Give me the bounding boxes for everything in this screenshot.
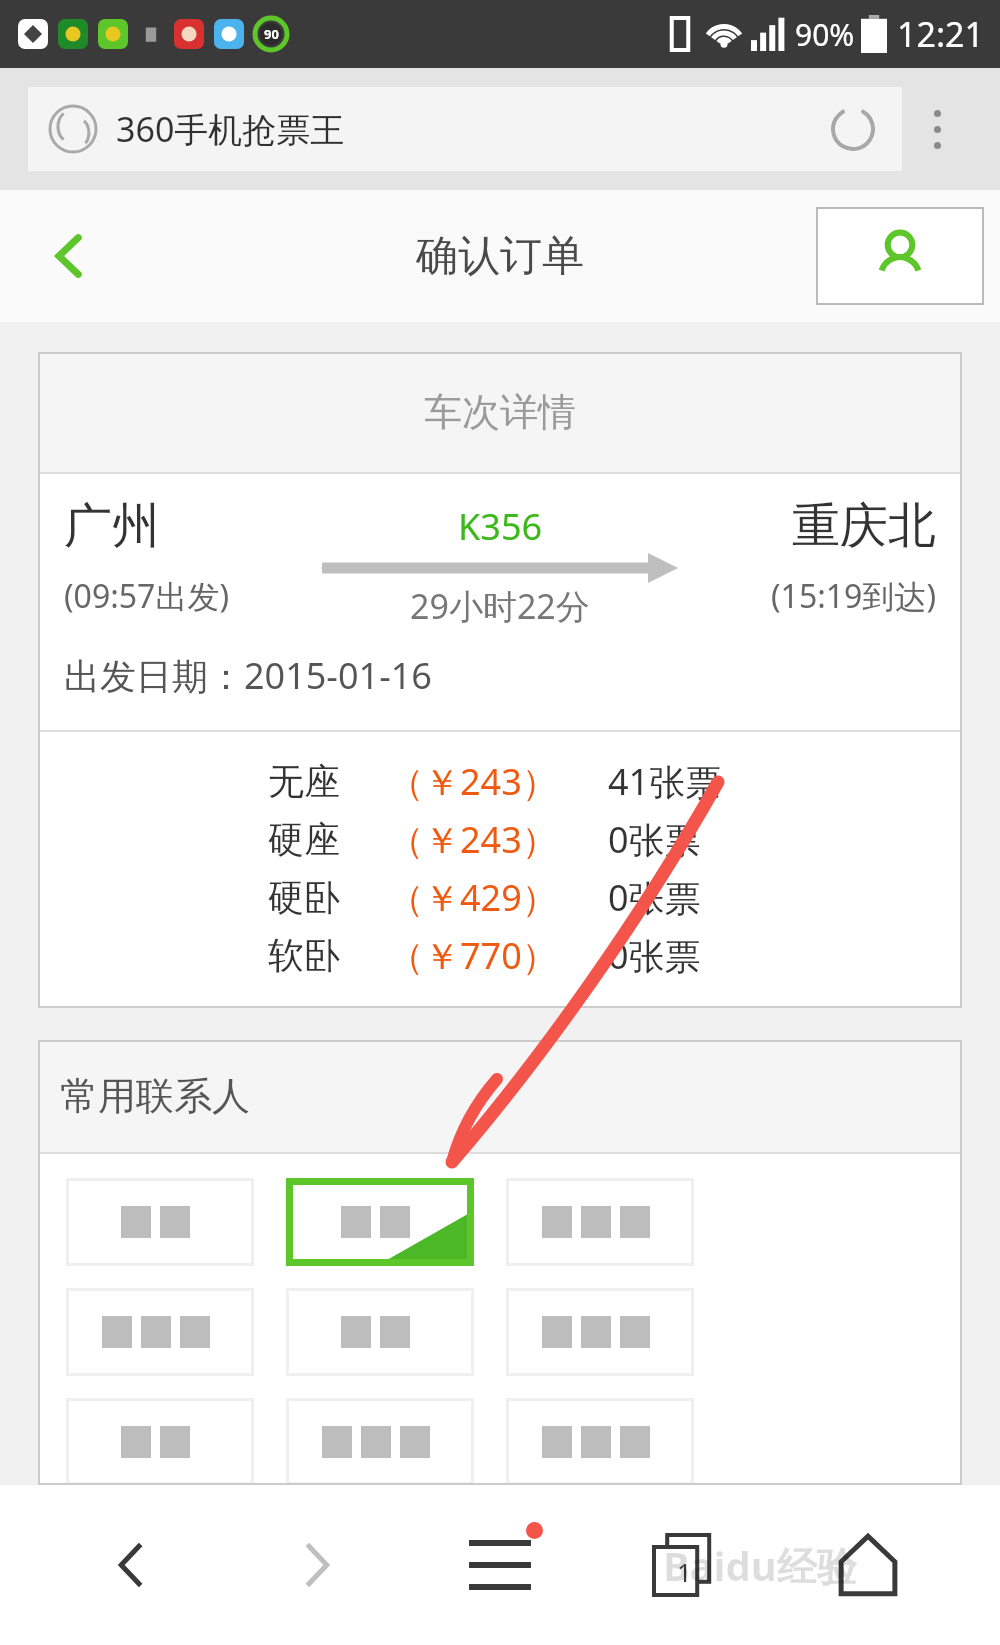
staticText: 确认订单 (416, 230, 584, 283)
button[interactable]: Account (816, 207, 984, 305)
staticText: 车次详情 (424, 388, 576, 436)
staticText: 0张票 (608, 931, 701, 980)
staticText: 无座 (268, 759, 340, 804)
button[interactable] (509, 1181, 691, 1263)
staticText: （￥770） (388, 931, 558, 980)
button[interactable] (509, 1401, 691, 1482)
button[interactable]: Menu (408, 1485, 592, 1645)
button[interactable] (289, 1291, 471, 1373)
staticText: 29小时22分 (410, 583, 590, 629)
button[interactable]: Refresh (824, 100, 882, 158)
staticText: （￥243） (388, 815, 558, 864)
button[interactable] (69, 1291, 251, 1373)
staticText: 硬座 (268, 817, 340, 862)
button[interactable]: More options (902, 87, 972, 171)
staticText: 90% (795, 14, 855, 55)
button[interactable]: 软卧 (38, 926, 962, 984)
button[interactable]: Forward (224, 1485, 408, 1645)
staticText: K356 (458, 502, 543, 551)
staticText: 软卧 (268, 933, 340, 978)
button[interactable] (289, 1401, 471, 1482)
button[interactable] (69, 1401, 251, 1482)
button[interactable]: Home (776, 1485, 960, 1645)
staticText: 广州 (64, 496, 160, 556)
staticText: 0张票 (608, 873, 701, 922)
button[interactable]: 硬卧 (38, 868, 962, 926)
staticText: （￥429） (388, 873, 558, 922)
staticText: 360手机抢票王 (116, 106, 345, 152)
staticText: 0张票 (608, 815, 701, 864)
button[interactable]: 硬座 (38, 810, 962, 868)
staticText: 出发日期：2015-01-16 (64, 651, 432, 700)
staticText: 41张票 (608, 757, 722, 806)
staticText: 1 (677, 1554, 692, 1589)
staticText: 常用联系人 (60, 1072, 250, 1120)
button[interactable]: 360手机抢票王 (28, 87, 902, 171)
button[interactable]: Back (0, 190, 140, 322)
staticText: (09:57出发) (64, 574, 229, 618)
button[interactable] (293, 1185, 467, 1259)
button[interactable]: Back (40, 1485, 224, 1645)
button[interactable]: 无座 (38, 752, 962, 810)
button[interactable] (69, 1181, 251, 1263)
staticText: 90 (264, 25, 279, 43)
staticText: 12:21 (897, 11, 984, 57)
staticText: （￥243） (388, 757, 558, 806)
staticText: 重庆北 (792, 496, 936, 556)
staticText: (15:19到达) (771, 574, 936, 618)
staticText: 硬卧 (268, 875, 340, 920)
staticText: Baidu经验 (663, 1538, 857, 1593)
button[interactable] (509, 1291, 691, 1373)
button[interactable]: Tabs (592, 1485, 776, 1645)
